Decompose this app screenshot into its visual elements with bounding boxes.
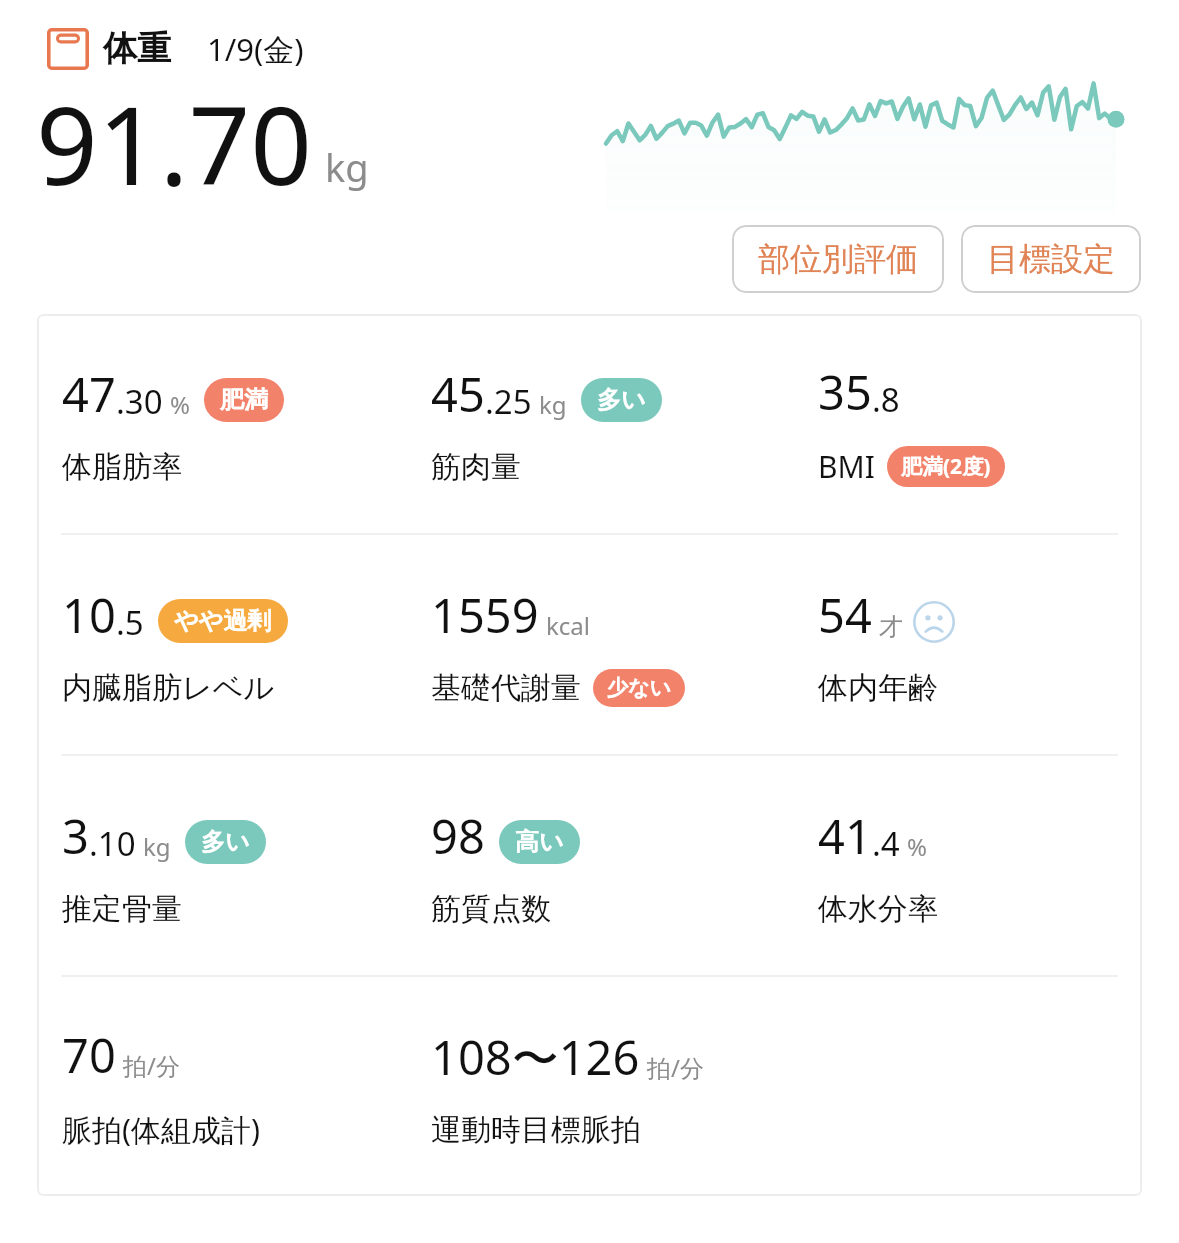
staticText: 体水分率: [818, 890, 938, 928]
staticText: %: [907, 830, 927, 863]
staticText: BMI: [818, 446, 875, 487]
button[interactable]: 10: [62, 583, 431, 707]
staticText: 高い: [515, 827, 564, 857]
staticText: 多い: [597, 385, 646, 415]
staticText: 45: [431, 362, 485, 426]
staticText: 脈拍(体組成計): [62, 1109, 260, 1150]
button[interactable]: 3: [62, 804, 431, 928]
staticText: 多い: [201, 827, 250, 857]
staticText: 少ない: [607, 675, 671, 701]
button[interactable]: 41: [818, 804, 1128, 928]
staticText: 98: [431, 804, 485, 868]
staticText: %: [170, 388, 190, 421]
staticText: 体内年齢: [818, 669, 938, 707]
button[interactable]: 98: [431, 804, 818, 928]
staticText: 肥満(2度): [901, 452, 991, 481]
staticText: 10: [62, 583, 116, 647]
button[interactable]: 1559: [431, 583, 818, 707]
button[interactable]: 35: [818, 360, 1128, 487]
staticText: 運動時目標脈拍: [431, 1111, 641, 1149]
staticText: 108〜126: [431, 1025, 640, 1089]
staticText: 才: [879, 612, 903, 642]
staticText: 41: [818, 804, 872, 868]
staticText: 部位別評価: [758, 239, 918, 279]
staticText: 体脂肪率: [62, 448, 182, 486]
staticText: kg: [325, 141, 369, 193]
staticText: 1559: [431, 583, 539, 647]
staticText: .5: [116, 600, 144, 645]
staticText: 筋肉量: [431, 448, 521, 486]
staticText: .4: [872, 821, 900, 866]
staticText: kg: [539, 388, 567, 421]
staticText: kcal: [546, 609, 590, 642]
staticText: 35: [818, 360, 872, 424]
staticText: 47: [62, 362, 116, 426]
staticText: 3: [62, 804, 89, 868]
button[interactable]: 45: [431, 362, 818, 486]
staticText: 54: [818, 583, 872, 647]
staticText: 1/9(金): [207, 28, 304, 70]
staticText: 肥満: [220, 385, 268, 415]
staticText: 拍/分: [123, 1049, 180, 1082]
staticText: 70: [62, 1023, 116, 1087]
button[interactable]: 70: [62, 1023, 431, 1150]
staticText: 拍/分: [647, 1051, 704, 1084]
staticText: 目標設定: [987, 239, 1115, 279]
button[interactable]: 108〜126: [431, 1025, 1128, 1149]
staticText: やや過剰: [174, 606, 272, 636]
staticText: 推定骨量: [62, 890, 182, 928]
staticText: 基礎代謝量: [431, 669, 581, 707]
button[interactable]: 54: [818, 583, 1128, 707]
button[interactable]: 部位別評価: [732, 225, 944, 293]
staticText: .30: [116, 379, 163, 424]
staticText: 体重: [103, 27, 171, 70]
staticText: kg: [143, 830, 171, 863]
staticText: 内臓脂肪レベル: [62, 669, 275, 707]
button[interactable]: 47: [62, 362, 431, 486]
staticText: .8: [872, 377, 900, 422]
staticText: 筋質点数: [431, 890, 551, 928]
staticText: .10: [89, 821, 136, 866]
button[interactable]: 目標設定: [961, 225, 1141, 293]
staticText: .25: [485, 379, 532, 424]
staticText: 91.70: [36, 70, 313, 207]
